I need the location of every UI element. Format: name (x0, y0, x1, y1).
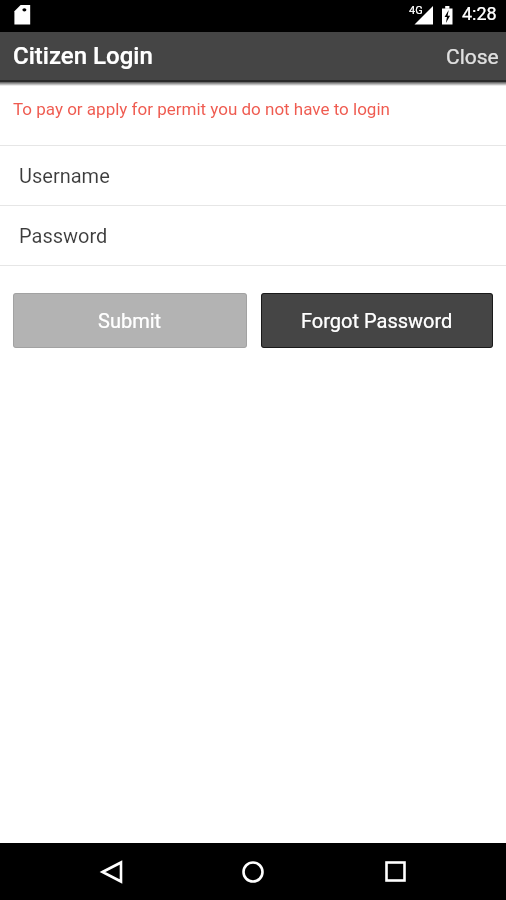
staticText: To pay or apply for permit you do not ha… (13, 99, 390, 119)
staticText: Username (19, 164, 110, 187)
staticText: Close (446, 45, 499, 70)
button[interactable]: Recents (365, 843, 425, 900)
button[interactable]: Home (223, 843, 283, 900)
staticText: Password (19, 224, 108, 247)
staticText: Submit (98, 309, 162, 332)
staticText: 4G (409, 4, 423, 17)
button[interactable]: Close (430, 32, 506, 80)
button[interactable]: Password (0, 206, 506, 265)
button[interactable]: Back (82, 843, 142, 900)
button[interactable]: Forgot Password (261, 293, 493, 348)
staticText: Forgot Password (301, 309, 453, 332)
button[interactable]: Username (0, 146, 506, 205)
staticText: Citizen Login (13, 42, 153, 70)
button[interactable]: Submit (13, 293, 247, 348)
staticText: 4:28 (462, 3, 497, 24)
